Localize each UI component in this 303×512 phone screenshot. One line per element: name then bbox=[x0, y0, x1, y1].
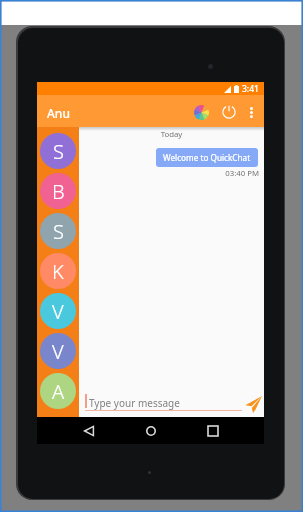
button[interactable]: V bbox=[40, 293, 76, 329]
staticText: S bbox=[53, 218, 64, 245]
button[interactable]: B bbox=[40, 173, 76, 209]
button[interactable]: Home bbox=[140, 420, 161, 441]
button[interactable]: K bbox=[40, 253, 76, 289]
staticText: V bbox=[52, 338, 64, 365]
button[interactable]: More options bbox=[241, 102, 261, 122]
button[interactable]: Back bbox=[78, 420, 99, 441]
button[interactable]: Change theme colour bbox=[190, 101, 212, 123]
button[interactable]: Welcome to QuickChat bbox=[156, 148, 258, 167]
button[interactable]: Send message bbox=[244, 395, 262, 413]
button[interactable]: Recent apps bbox=[202, 420, 223, 441]
staticText: 3:41 bbox=[242, 83, 259, 95]
staticText: Anu bbox=[47, 105, 70, 121]
button[interactable]: V bbox=[40, 333, 76, 369]
button[interactable]: Log out bbox=[218, 101, 240, 123]
staticText: Type your message bbox=[89, 396, 180, 410]
staticText: Welcome to QuickChat bbox=[163, 152, 251, 163]
staticText: A bbox=[52, 378, 65, 405]
button[interactable]: S bbox=[40, 133, 76, 169]
staticText: K bbox=[52, 258, 64, 285]
button[interactable]: S bbox=[40, 213, 76, 249]
staticText: 03:40 PM bbox=[79, 168, 259, 179]
staticText: S bbox=[53, 138, 64, 165]
staticText: V bbox=[52, 298, 64, 325]
staticText: Today bbox=[79, 129, 264, 140]
button[interactable]: A bbox=[40, 373, 76, 409]
staticText: B bbox=[52, 178, 65, 205]
